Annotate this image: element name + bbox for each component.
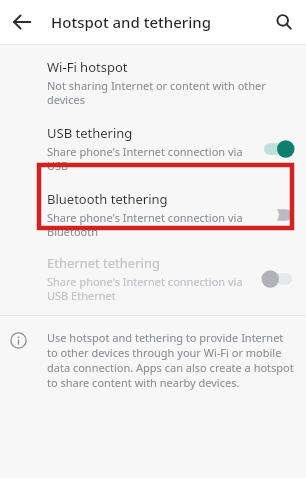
staticText: Share phone's Internet connection via US…: [47, 144, 252, 173]
staticText: Wi-Fi hotspot: [47, 58, 128, 76]
staticText: Hotspot and tethering: [51, 12, 211, 32]
staticText: USB tethering: [47, 124, 133, 142]
button[interactable]: Bluetooth tethering: [0, 190, 306, 239]
button[interactable]: Search: [267, 5, 301, 39]
staticText: Share phone's Internet connection via US…: [47, 274, 252, 303]
button[interactable]: Back: [4, 4, 40, 40]
button[interactable]: USB tethering: [0, 124, 306, 173]
staticText: Use hotspot and tethering to provide Int…: [47, 330, 294, 390]
button[interactable]: Toggle: [260, 266, 296, 292]
button[interactable]: Toggle: [260, 202, 296, 228]
staticText: Bluetooth tethering: [47, 190, 168, 208]
button[interactable]: Ethernet tethering: [0, 254, 306, 303]
staticText: Share phone's Internet connection via Bl…: [47, 210, 252, 239]
staticText: Ethernet tethering: [47, 254, 160, 272]
button[interactable]: Toggle: [260, 136, 296, 162]
staticText: Not sharing Internet or content with oth…: [47, 78, 288, 107]
button[interactable]: Wi-Fi hotspot: [0, 58, 306, 107]
